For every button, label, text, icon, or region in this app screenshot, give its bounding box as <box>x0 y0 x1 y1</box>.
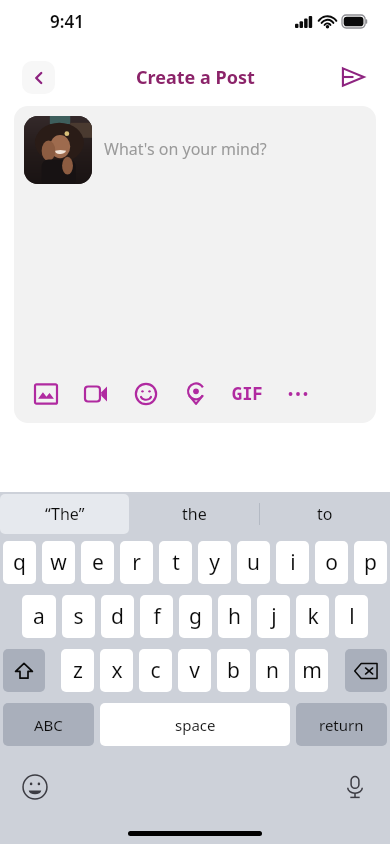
button[interactable]: return <box>296 703 387 746</box>
staticText: s <box>73 602 84 631</box>
button[interactable]: to <box>260 492 390 536</box>
staticText: y <box>209 548 220 577</box>
staticText: g <box>189 602 202 631</box>
staticText: f <box>153 602 161 631</box>
staticText: 9:41 <box>50 10 84 33</box>
button[interactable]: i <box>276 541 309 584</box>
staticText: GIF <box>232 382 263 405</box>
button[interactable]: f <box>140 595 173 638</box>
staticText: m <box>302 656 322 685</box>
button[interactable]: “The” <box>0 494 129 534</box>
button[interactable]: l <box>335 595 368 638</box>
button[interactable]: b <box>217 649 250 692</box>
button[interactable]: z <box>61 649 94 692</box>
button[interactable]: Emoji keyboard <box>22 774 48 800</box>
staticText: e <box>92 548 104 577</box>
button[interactable]: GIF <box>230 380 265 407</box>
button[interactable]: Profile picture <box>24 116 92 184</box>
button[interactable]: d <box>101 595 134 638</box>
button[interactable]: Photo <box>34 382 58 406</box>
button[interactable]: y <box>198 541 231 584</box>
staticText: o <box>325 548 338 577</box>
staticText: a <box>33 602 45 631</box>
staticText: n <box>266 656 279 685</box>
button[interactable]: r <box>120 541 153 584</box>
staticText: h <box>228 602 241 631</box>
staticText: the <box>182 503 207 525</box>
button[interactable]: o <box>315 541 348 584</box>
button[interactable]: Video <box>84 382 108 406</box>
button[interactable]: Shift <box>3 649 45 692</box>
button[interactable]: j <box>257 595 290 638</box>
button[interactable]: m <box>295 649 328 692</box>
button[interactable]: Back <box>22 61 55 94</box>
button[interactable]: ABC <box>3 703 94 746</box>
button[interactable]: s <box>62 595 95 638</box>
staticText: w <box>50 548 67 577</box>
button[interactable]: x <box>100 649 133 692</box>
staticText: z <box>73 656 83 685</box>
button[interactable]: space <box>100 703 290 746</box>
staticText: d <box>111 602 124 631</box>
staticText: space <box>175 715 216 735</box>
button[interactable]: h <box>218 595 251 638</box>
staticText: x <box>111 656 123 685</box>
staticText: t <box>172 548 180 577</box>
staticText: l <box>349 602 355 631</box>
button[interactable]: w <box>42 541 75 584</box>
staticText: u <box>247 548 260 577</box>
staticText: return <box>319 715 364 735</box>
staticText: b <box>227 656 240 685</box>
staticText: c <box>150 656 161 685</box>
button[interactable]: t <box>159 541 192 584</box>
button[interactable]: g <box>179 595 212 638</box>
staticText: Create a Post <box>136 65 255 90</box>
button[interactable]: the <box>129 492 259 536</box>
staticText: p <box>364 548 377 577</box>
staticText: i <box>290 548 296 577</box>
button[interactable]: Delete <box>345 649 387 692</box>
staticText: What's on your mind? <box>104 138 267 160</box>
button[interactable]: More options <box>287 383 309 405</box>
button[interactable]: a <box>22 595 56 638</box>
button[interactable]: v <box>178 649 211 692</box>
staticText: r <box>132 548 141 577</box>
staticText: j <box>271 602 277 631</box>
staticText: k <box>307 602 319 631</box>
button[interactable]: Emoji <box>134 382 158 406</box>
button[interactable]: p <box>354 541 387 584</box>
button[interactable]: q <box>3 541 36 584</box>
button[interactable]: u <box>237 541 270 584</box>
button[interactable]: Location <box>184 382 208 406</box>
staticText: v <box>189 656 200 685</box>
staticText: “The” <box>45 503 85 525</box>
button[interactable]: c <box>139 649 172 692</box>
staticText: ABC <box>34 715 63 735</box>
button[interactable]: e <box>81 541 114 584</box>
staticText: to <box>317 503 333 525</box>
button[interactable]: Dictation <box>342 774 368 800</box>
button[interactable]: n <box>256 649 289 692</box>
button[interactable]: k <box>296 595 329 638</box>
button[interactable]: Profile picture <box>14 106 376 423</box>
staticText: q <box>13 548 26 577</box>
button[interactable]: Send <box>336 60 370 94</box>
